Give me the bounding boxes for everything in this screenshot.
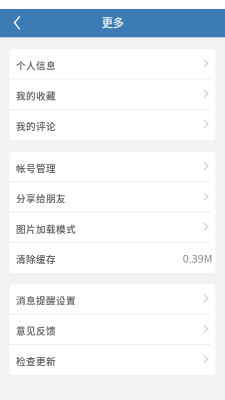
staticText: 个人信息 bbox=[16, 58, 56, 72]
button[interactable]: 检查更新 bbox=[9, 345, 215, 375]
staticText: 更多 bbox=[101, 14, 123, 30]
button[interactable]: 我的评论 bbox=[9, 110, 215, 140]
staticText: 图片加载模式 bbox=[16, 221, 76, 235]
staticText: 意见反馈 bbox=[16, 323, 56, 337]
button[interactable]: 我的收藏 bbox=[9, 79, 215, 110]
button[interactable]: 分享给朋友 bbox=[9, 182, 215, 212]
button[interactable]: 图片加载模式 bbox=[9, 212, 215, 243]
staticText: 帐号管理 bbox=[16, 161, 56, 175]
staticText: 分享给朋友 bbox=[16, 191, 66, 205]
staticText: 检查更新 bbox=[16, 354, 56, 368]
button[interactable]: 清除缓存 bbox=[9, 243, 215, 273]
button[interactable]: 帐号管理 bbox=[9, 152, 215, 182]
button[interactable]: 意见反馈 bbox=[9, 314, 215, 345]
staticText: 我的收藏 bbox=[16, 88, 56, 102]
button[interactable]: Back bbox=[0, 9, 31, 37]
button[interactable]: 个人信息 bbox=[9, 49, 215, 79]
staticText: 我的评论 bbox=[16, 119, 56, 133]
staticText: 0.39M bbox=[183, 250, 213, 266]
staticText: 清除缓存 bbox=[16, 252, 56, 266]
button[interactable]: 消息提醒设置 bbox=[9, 284, 215, 314]
staticText: 消息提醒设置 bbox=[16, 293, 76, 307]
